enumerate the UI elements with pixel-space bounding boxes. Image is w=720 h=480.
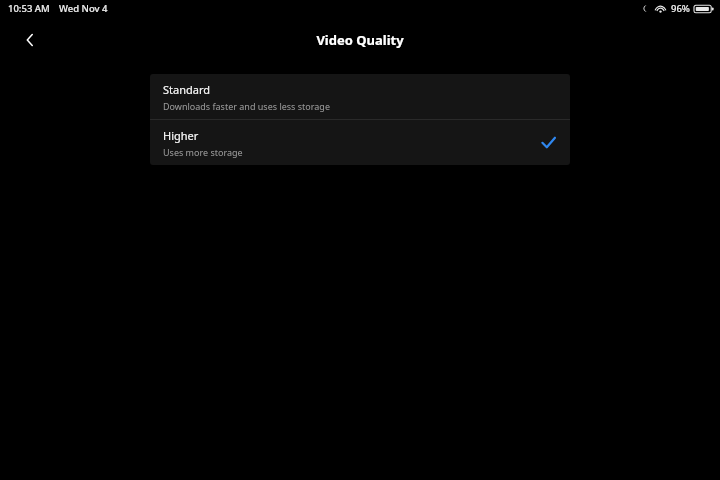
staticText: Wed Nov 4 [59, 2, 108, 15]
staticText: Higher [163, 128, 199, 143]
staticText: Video Quality [316, 31, 404, 49]
staticText: 96% [671, 2, 690, 15]
staticText: 10:53 AM [8, 2, 50, 15]
staticText: Downloads faster and uses less storage [163, 100, 330, 112]
staticText: Standard [163, 82, 211, 97]
staticText: Uses more storage [163, 146, 243, 158]
button[interactable]: Back [12, 22, 48, 58]
button[interactable]: Higher [150, 120, 570, 165]
button[interactable]: Standard [150, 74, 570, 119]
